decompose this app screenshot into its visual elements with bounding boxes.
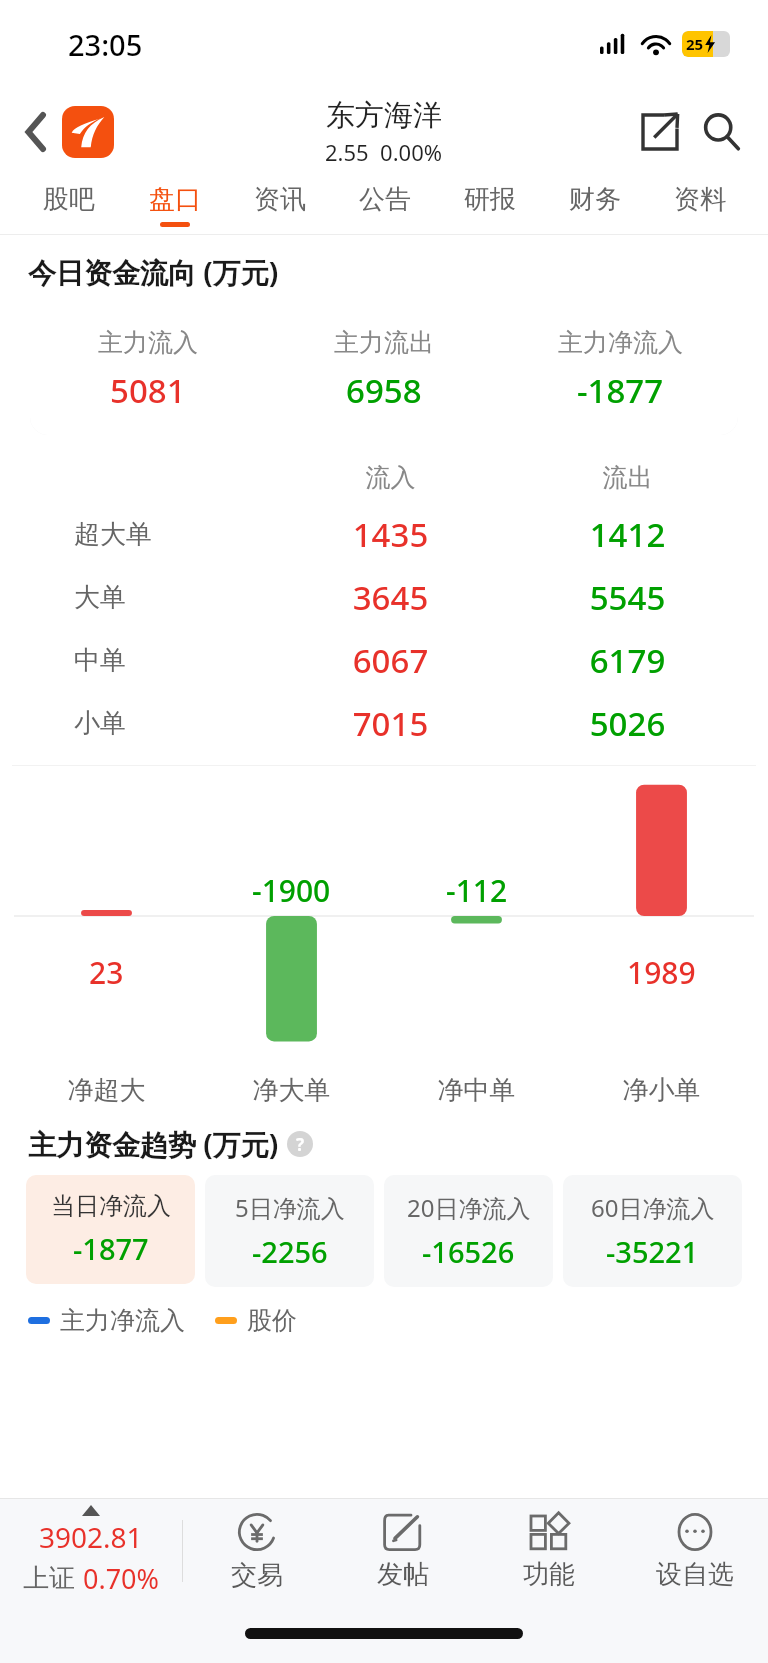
staticText: 主力流入: [98, 327, 198, 358]
staticText: 7015: [272, 701, 509, 746]
staticText: 6179: [509, 638, 746, 683]
staticText: 功能: [523, 1558, 575, 1591]
button[interactable]: 20日净流入: [384, 1175, 553, 1287]
button[interactable]: Share: [634, 106, 686, 158]
staticText: 公告: [359, 183, 411, 216]
staticText: 5545: [509, 575, 746, 620]
button[interactable]: 5日净流入: [205, 1175, 374, 1287]
staticText: 发帖: [377, 1558, 429, 1591]
staticText: 研报: [464, 183, 516, 216]
staticText: 主力流出: [334, 327, 434, 358]
button[interactable]: 研报: [437, 176, 542, 234]
button[interactable]: 资料: [647, 176, 752, 234]
button[interactable]: 设自选: [622, 1499, 768, 1603]
staticText: 60日净流入: [591, 1191, 715, 1224]
staticText: 2.55 0.00%: [325, 137, 443, 167]
staticText: 资料: [674, 183, 726, 216]
staticText: 流出: [509, 462, 746, 493]
button[interactable]: 公告: [332, 176, 437, 234]
button[interactable]: Help: [287, 1131, 313, 1157]
staticText: ?: [296, 1133, 305, 1156]
staticText: 20日净流入: [407, 1191, 531, 1224]
staticText: 小单: [74, 707, 272, 740]
staticText: 股价: [247, 1305, 297, 1336]
staticText: -2256: [252, 1232, 328, 1271]
staticText: 当日净流入: [51, 1191, 171, 1221]
staticText: 上证: [23, 1562, 75, 1595]
staticText: 23:05: [68, 25, 143, 64]
staticText: 3902.81: [39, 1518, 143, 1556]
button[interactable]: 资讯: [227, 176, 332, 234]
staticText: 大单: [74, 581, 272, 614]
button[interactable]: 当日净流入: [26, 1175, 195, 1284]
staticText: -112: [446, 870, 508, 911]
button[interactable]: 发帖: [330, 1499, 476, 1603]
button[interactable]: 财务: [542, 176, 647, 234]
staticText: 净中单: [384, 1074, 569, 1107]
staticText: 设自选: [656, 1558, 734, 1591]
staticText: 0.70%: [83, 1560, 160, 1597]
staticText: 3645: [272, 575, 509, 620]
staticText: 主力净流入: [558, 327, 683, 358]
staticText: 主力净流入: [60, 1305, 185, 1336]
staticText: 交易: [231, 1559, 283, 1592]
staticText: 净大单: [199, 1074, 384, 1107]
button[interactable]: 交易: [183, 1499, 330, 1603]
staticText: 流入: [272, 462, 509, 493]
staticText: 25: [686, 34, 704, 54]
staticText: 财务: [569, 183, 621, 216]
staticText: -35221: [606, 1232, 699, 1271]
staticText: 资讯: [254, 183, 306, 216]
button[interactable]: 3902.81: [0, 1499, 182, 1603]
staticText: 东方海洋: [326, 97, 442, 134]
button[interactable]: 功能: [476, 1499, 622, 1603]
button[interactable]: Back: [14, 110, 58, 154]
staticText: 6067: [272, 638, 509, 683]
staticText: 主力资金趋势 (万元): [28, 1125, 279, 1163]
staticText: 6958: [346, 368, 422, 413]
staticText: 1412: [509, 512, 746, 557]
staticText: 23: [89, 952, 124, 993]
staticText: 中单: [74, 644, 272, 677]
staticText: 今日资金流向 (万元): [28, 253, 279, 291]
button[interactable]: App logo: [62, 106, 114, 158]
staticText: 5081: [110, 368, 186, 413]
staticText: 净超大: [14, 1074, 199, 1107]
staticText: 5日净流入: [235, 1191, 345, 1224]
button[interactable]: 60日净流入: [563, 1175, 742, 1287]
staticText: 超大单: [74, 518, 272, 551]
staticText: 净小单: [569, 1074, 754, 1107]
staticText: -1900: [252, 870, 331, 911]
button[interactable]: 盘口: [122, 176, 227, 234]
staticText: -16526: [422, 1232, 515, 1271]
staticText: -1877: [73, 1229, 149, 1268]
staticText: 盘口: [149, 183, 201, 216]
staticText: -1877: [577, 368, 664, 413]
staticText: 股吧: [43, 183, 95, 216]
button[interactable]: 股吧: [16, 176, 122, 234]
staticText: 1989: [627, 952, 696, 993]
staticText: 1435: [272, 512, 509, 557]
staticText: 5026: [509, 701, 746, 746]
button[interactable]: Search: [694, 104, 750, 160]
